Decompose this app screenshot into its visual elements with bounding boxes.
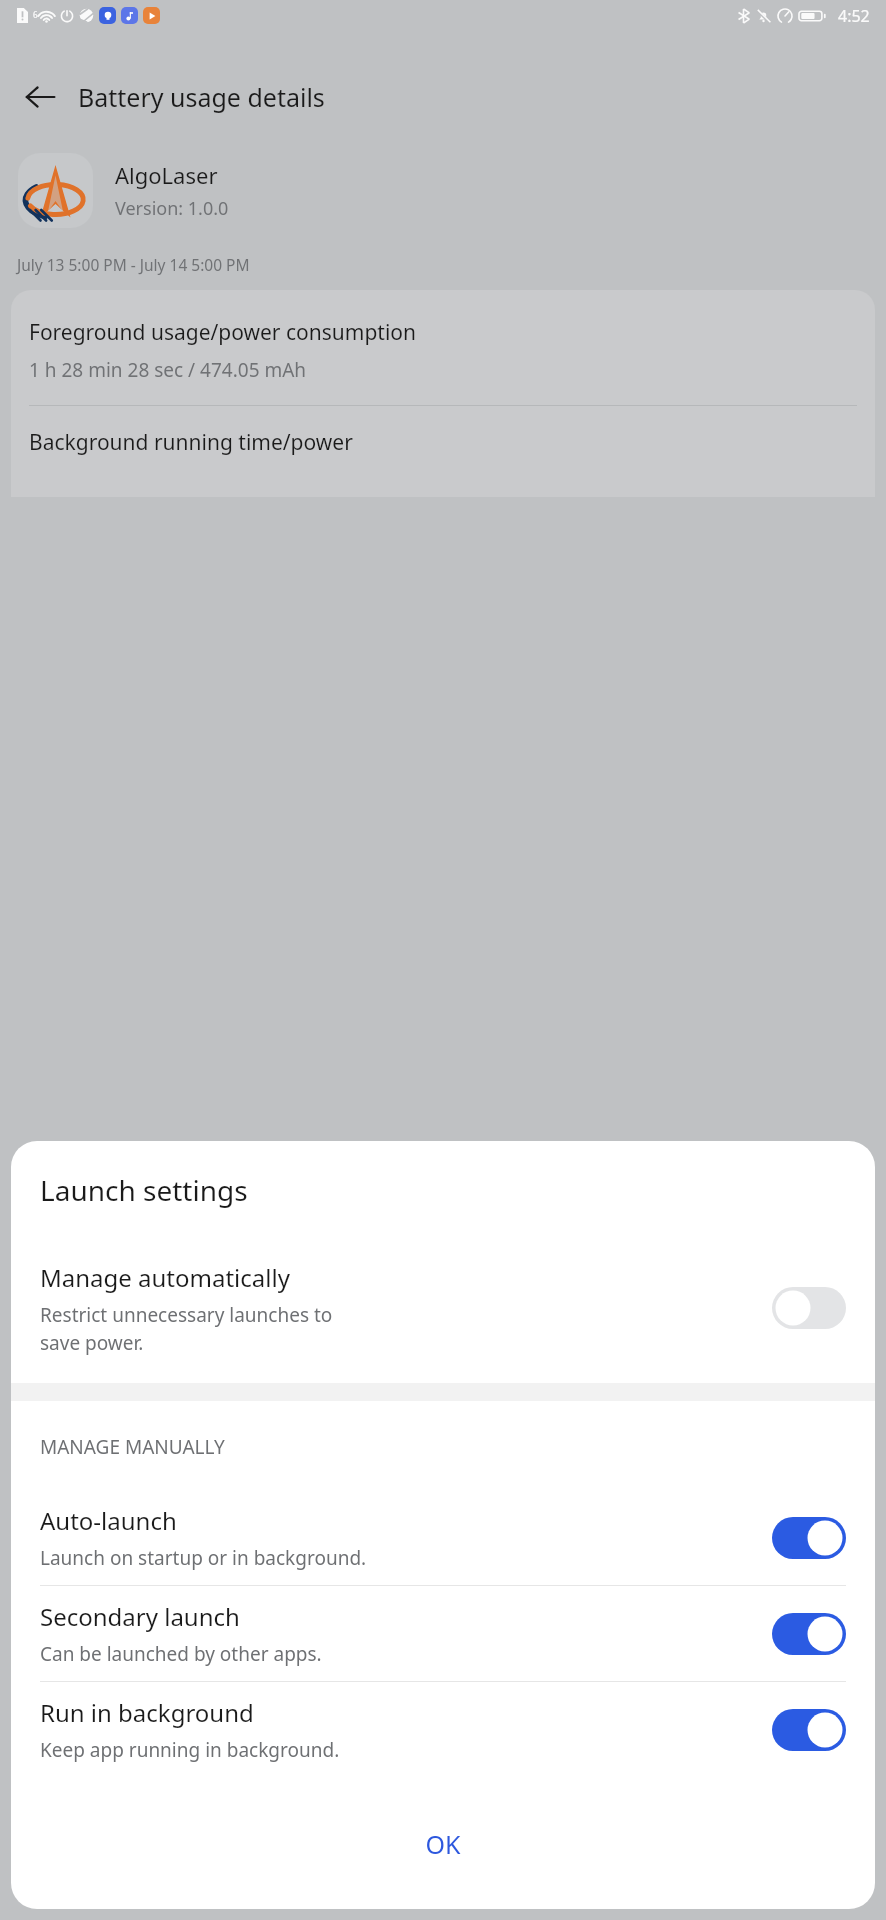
staticText: Keep app running in background. [40,1737,340,1763]
button[interactable]: Secondary launch [11,1586,875,1681]
button[interactable]: Manage automatically [11,1247,875,1369]
button[interactable]: Run in background [11,1682,875,1777]
staticText: Version: 1.0.0 [115,196,229,221]
staticText: 1 h 28 min 28 sec / 474.05 mAh [29,357,307,383]
staticText: Launch on startup or in background. [40,1545,367,1571]
staticText: AlgoLaser [115,160,218,190]
staticText: Auto-launch [40,1504,177,1537]
button[interactable]: Off [772,1287,846,1329]
staticText: Secondary launch [40,1600,240,1633]
staticText: Battery usage details [78,80,325,114]
staticText: Restrict unnecessary launches to save po… [40,1302,333,1355]
button[interactable]: Back [12,69,68,125]
staticText: Manage automatically [40,1261,290,1294]
button[interactable]: On [772,1613,846,1655]
staticText: 4:52 [838,5,870,27]
staticText: Background running time/power [29,428,353,457]
staticText: MANAGE MANUALLY [40,1434,225,1460]
button[interactable]: On [772,1517,846,1559]
button[interactable]: Auto-launch [11,1490,875,1585]
button[interactable]: On [772,1709,846,1751]
staticText: 6 [33,9,38,20]
staticText: Foreground usage/power consumption [29,318,417,347]
staticText: OK [425,1827,461,1861]
staticText: Can be launched by other apps. [40,1641,322,1667]
button[interactable]: OK [11,1813,875,1875]
staticText: Launch settings [40,1171,248,1209]
staticText: Run in background [40,1696,254,1729]
staticText: July 13 5:00 PM - July 14 5:00 PM [17,254,250,275]
